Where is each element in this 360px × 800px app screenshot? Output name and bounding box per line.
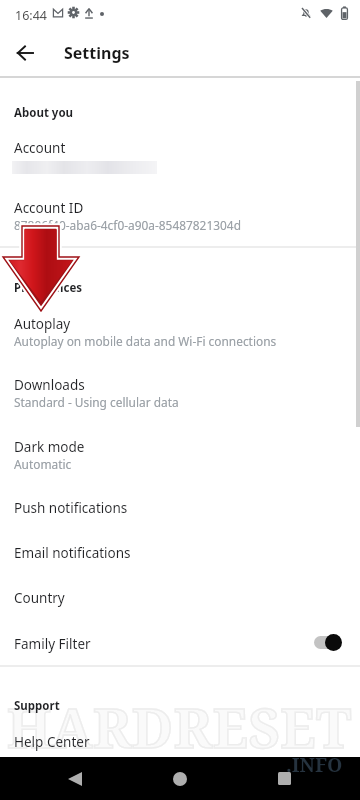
staticText: Standard - Using cellular data (14, 394, 179, 410)
staticText: Help Center (14, 733, 90, 751)
button[interactable] (0, 580, 360, 625)
staticText: Account ID (14, 199, 84, 217)
staticText: Family Filter (14, 635, 91, 653)
button[interactable] (0, 367, 360, 419)
button[interactable] (0, 490, 360, 535)
staticText: Country (14, 589, 65, 607)
staticText: Email notifications (14, 544, 131, 562)
staticText: About you (14, 105, 74, 121)
button[interactable]: Home (158, 757, 202, 800)
button[interactable] (0, 190, 360, 238)
staticText: Autoplay on mobile data and Wi-Fi connec… (14, 333, 277, 349)
button[interactable] (0, 429, 360, 481)
button[interactable]: Recents (262, 757, 306, 800)
staticText: 16:44 (15, 7, 47, 24)
staticText: Preferences (14, 280, 83, 296)
button[interactable]: Back (53, 757, 97, 800)
staticText: HARDRESET (7, 690, 352, 764)
staticText: Automatic (14, 456, 72, 472)
staticText: .INFO (286, 751, 343, 778)
staticText: Account (14, 139, 66, 157)
button[interactable] (0, 306, 360, 358)
button[interactable] (0, 130, 360, 178)
staticText: Push notifications (14, 499, 128, 517)
staticText: HARDRESET (7, 690, 352, 764)
staticText: Downloads (14, 376, 85, 394)
staticText: 87806f40-aba6-4cf0-a90a-85487821304d (14, 217, 241, 233)
staticText: Support (14, 698, 60, 714)
button[interactable] (0, 535, 360, 580)
staticText: Settings (64, 42, 130, 64)
button[interactable] (0, 724, 360, 766)
button[interactable] (0, 626, 360, 671)
button[interactable]: Back (4, 32, 45, 73)
staticText: Autoplay (14, 315, 71, 333)
staticText: Dark mode (14, 438, 85, 456)
